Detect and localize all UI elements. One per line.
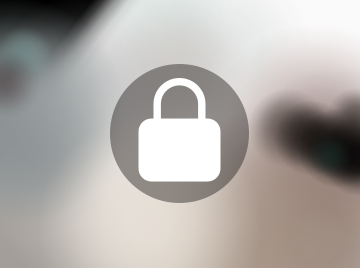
button[interactable]: Locked content bbox=[110, 64, 249, 203]
